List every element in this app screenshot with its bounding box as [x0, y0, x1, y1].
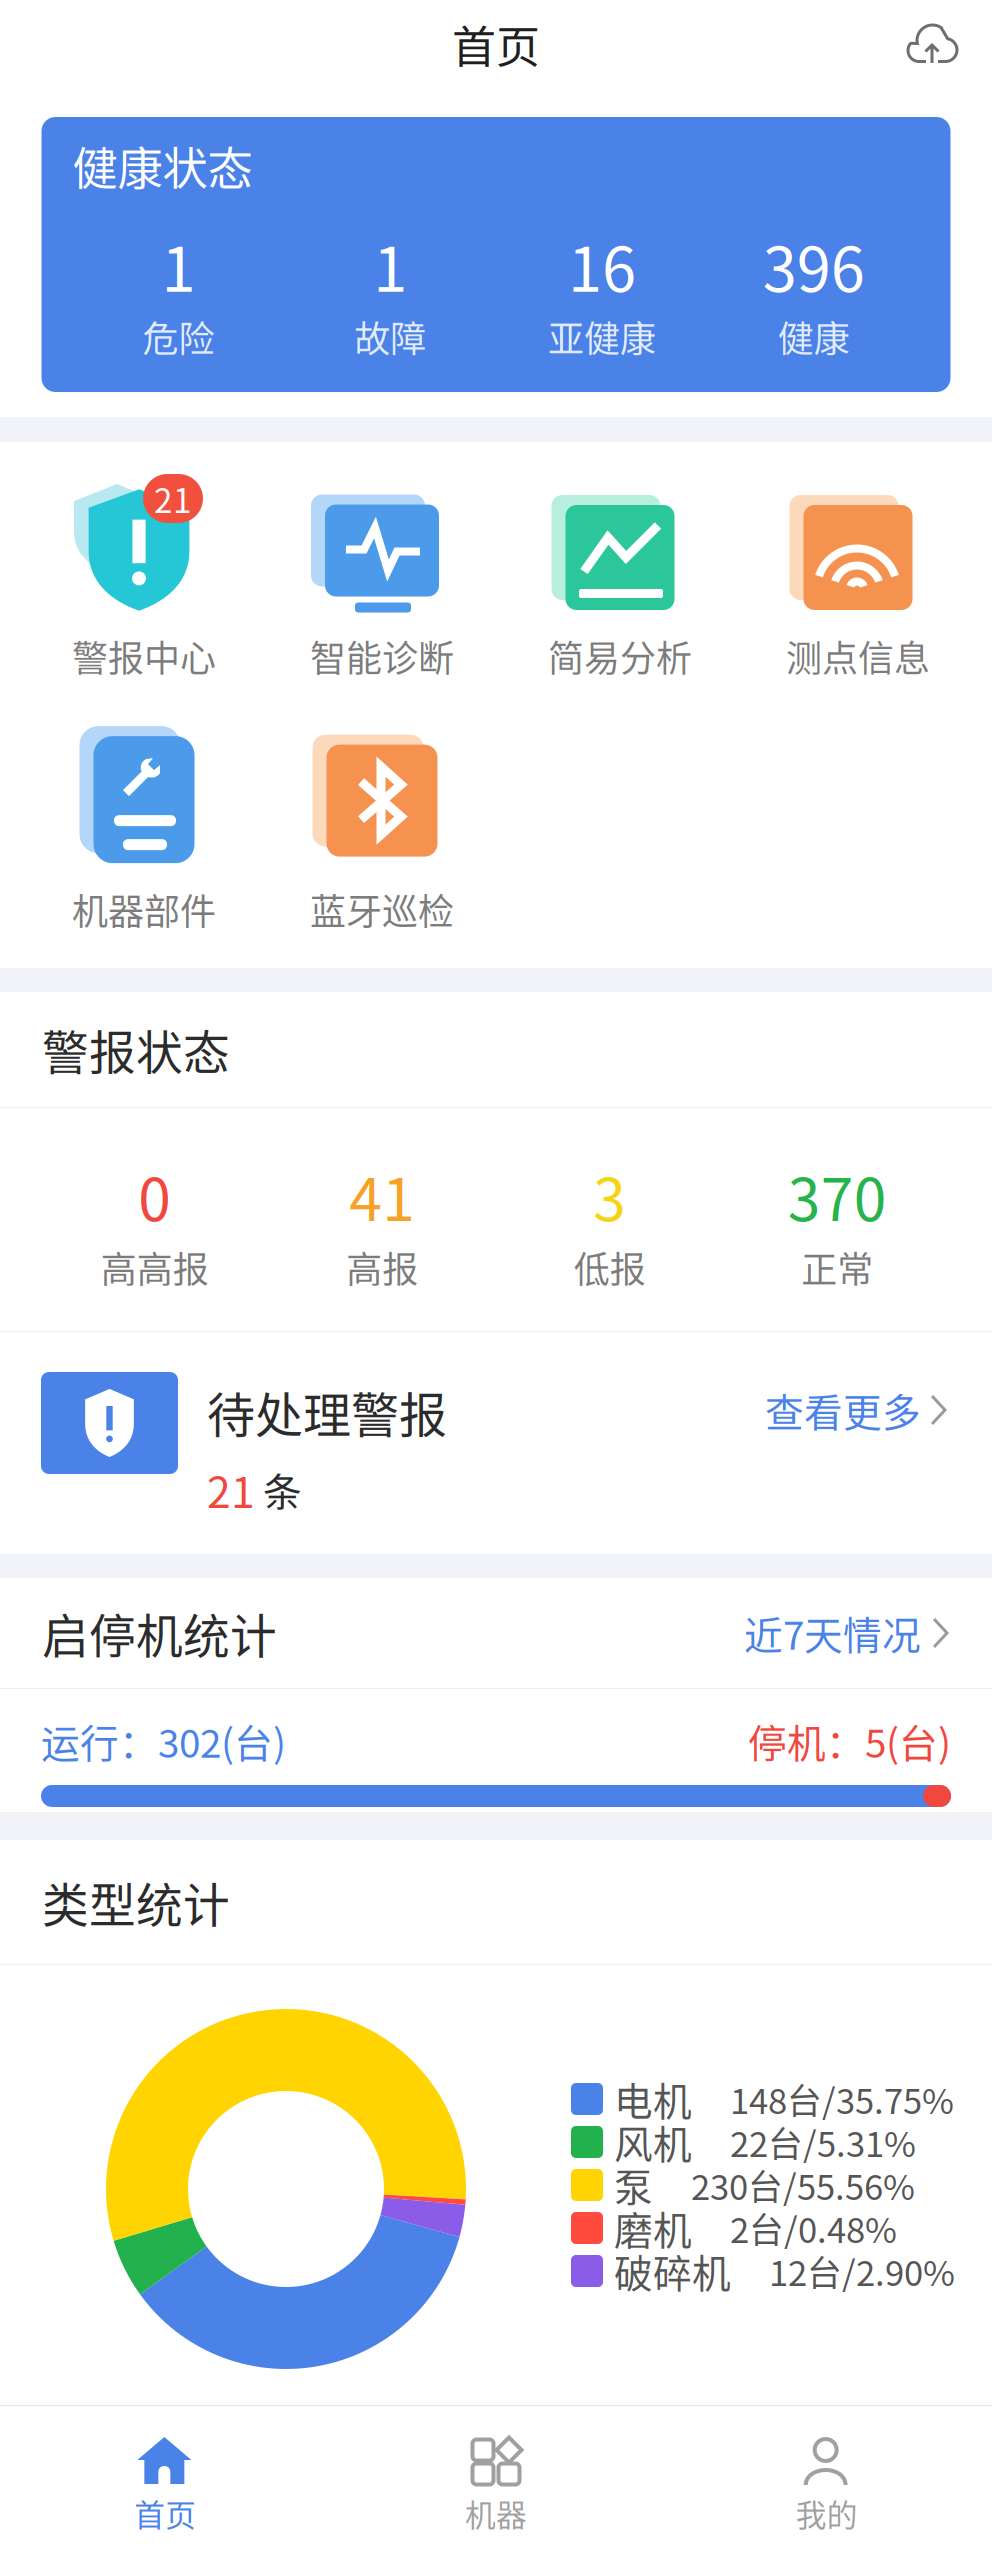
button[interactable]: 待处理警报 [0, 1332, 992, 1554]
staticText: 条 [263, 1461, 302, 1517]
staticText: 16 [568, 221, 636, 309]
staticText: 电机 [614, 2071, 692, 2127]
staticText: 亚健康 [548, 310, 656, 363]
staticText: 1 [373, 221, 407, 309]
staticText: 首页 [452, 12, 540, 76]
staticText: 2台/0.48% [730, 2203, 897, 2253]
staticText: 21 [154, 474, 192, 523]
staticText: 近7天情况 [744, 1605, 921, 1661]
staticText: 高报 [346, 1241, 418, 1293]
staticText: 健康 [778, 310, 850, 363]
button[interactable]: Upload to cloud [902, 18, 992, 70]
button[interactable]: 我的 [661, 2406, 992, 2560]
staticText: 警报中心 [72, 630, 216, 682]
staticText: 低报 [574, 1241, 646, 1293]
button[interactable]: 近7天情况 [744, 1605, 950, 1661]
staticText: 类型统计 [42, 1868, 230, 1936]
staticText: 22台/5.31% [730, 2117, 916, 2167]
button[interactable]: 测点信息 [739, 474, 977, 682]
staticText: 230台/55.56% [691, 2160, 915, 2210]
staticText: 破碎机 [614, 2243, 731, 2299]
button[interactable]: 简易分析 [501, 474, 739, 682]
staticText: 危险 [142, 310, 214, 363]
staticText: 故障 [354, 310, 426, 363]
button[interactable]: 蓝牙巡检 [263, 727, 501, 935]
button[interactable]: 智能诊断 [263, 474, 501, 682]
staticText: 启停机统计 [42, 1599, 277, 1667]
staticText: 0 [138, 1153, 171, 1238]
staticText: 370 [788, 1153, 887, 1238]
staticText: 健康状态 [72, 133, 252, 199]
staticText: 蓝牙巡检 [310, 883, 454, 935]
button[interactable]: 首页 [0, 2406, 331, 2560]
button[interactable]: 机器 [331, 2406, 661, 2560]
staticText: 21 [207, 1458, 255, 1520]
staticText: 396 [763, 221, 865, 309]
staticText: 我的 [796, 2491, 858, 2535]
staticText: 智能诊断 [310, 630, 454, 682]
staticText: 3 [593, 1153, 626, 1238]
staticText: 查看更多 [765, 1382, 921, 1438]
staticText: 机器 [465, 2491, 527, 2535]
staticText: 待处理警报 [207, 1377, 447, 1446]
staticText: 简易分析 [548, 630, 692, 682]
staticText: 运行：302(台) [41, 1713, 286, 1769]
staticText: 148台/35.75% [730, 2074, 954, 2124]
staticText: 泵 [614, 2157, 653, 2213]
staticText: 高高报 [101, 1241, 209, 1293]
staticText: 警报状态 [42, 1016, 230, 1083]
staticText: 风机 [614, 2114, 692, 2170]
staticText: 停机：5(台) [748, 1713, 951, 1769]
button[interactable]: 21 [25, 474, 263, 682]
staticText: 12台/2.90% [769, 2246, 955, 2296]
button[interactable]: 机器部件 [25, 727, 263, 935]
staticText: 机器部件 [72, 883, 216, 935]
staticText: 测点信息 [786, 630, 930, 682]
staticText: 41 [349, 1153, 415, 1238]
staticText: 首页 [134, 2491, 196, 2535]
staticText: 1 [161, 221, 195, 309]
staticText: 正常 [801, 1241, 873, 1293]
staticText: 磨机 [614, 2200, 692, 2256]
